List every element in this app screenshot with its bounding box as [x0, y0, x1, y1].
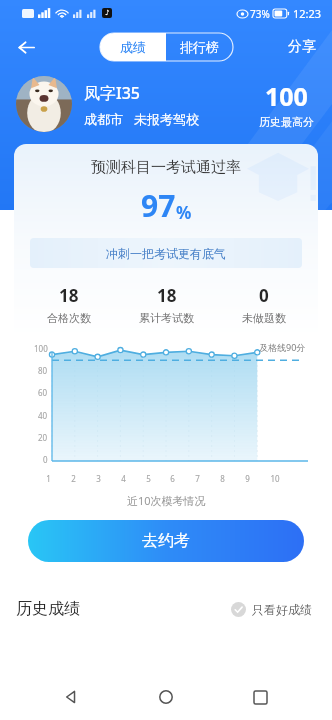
staticText: 3	[96, 473, 101, 484]
staticText: 成绩	[120, 39, 146, 55]
staticText: 历史最高分	[259, 115, 314, 129]
staticText: 分享	[288, 38, 316, 56]
button[interactable]: 排行榜	[166, 33, 233, 61]
staticText: 0	[259, 284, 269, 307]
button[interactable]: 18	[20, 284, 118, 325]
staticText: 凤字I35	[84, 82, 140, 104]
button[interactable]: 成绩	[100, 33, 166, 61]
staticText: 80	[38, 365, 48, 376]
button[interactable]: 冲刺一把考试更有底气	[30, 238, 302, 268]
button[interactable]: Back	[50, 675, 94, 719]
staticText: 18	[59, 284, 79, 307]
staticText: 0	[43, 454, 48, 465]
button[interactable]: Back	[8, 29, 44, 65]
staticText: 预测科目一考试通过率	[91, 158, 241, 177]
button[interactable]: 0	[215, 284, 312, 325]
staticText: 2	[71, 473, 76, 484]
staticText: 6	[170, 473, 175, 484]
staticText: 近10次模考情况	[127, 493, 206, 508]
staticText: 累计考试数	[139, 311, 194, 325]
staticText: %	[176, 201, 192, 224]
staticText: 100	[265, 79, 308, 113]
staticText: ♪	[105, 9, 110, 17]
staticText: 历史成绩	[16, 599, 80, 619]
staticText: 及格线90分	[259, 341, 306, 353]
staticText: 7	[195, 473, 200, 484]
staticText: 只看好成绩	[252, 602, 312, 617]
staticText: 5	[146, 473, 151, 484]
staticText: 100	[34, 343, 48, 354]
staticText: 12:23	[293, 6, 322, 21]
staticText: 成都市	[84, 111, 123, 127]
staticText: 18	[157, 284, 177, 307]
button[interactable]: 分享	[284, 34, 320, 60]
button[interactable]: 去约考	[28, 520, 304, 562]
staticText: 冲刺一把考试更有底气	[106, 246, 226, 261]
staticText: 8	[220, 473, 225, 484]
staticText: 9	[245, 473, 250, 484]
staticText: 97	[141, 185, 176, 226]
button[interactable]: 只看好成绩	[227, 598, 316, 621]
staticText: 排行榜	[180, 39, 219, 55]
staticText: 73%	[250, 7, 270, 21]
staticText: 未做题数	[242, 311, 286, 325]
staticText: 10	[270, 473, 280, 484]
staticText: 4	[121, 473, 126, 484]
button[interactable]	[16, 76, 72, 132]
staticText: 40	[38, 410, 48, 421]
button[interactable]: Recents	[238, 675, 282, 719]
staticText: 60	[38, 387, 48, 398]
staticText: 去约考	[142, 531, 190, 551]
staticText: 合格次数	[47, 311, 91, 325]
staticText: 未报考驾校	[134, 111, 199, 127]
staticText: 1	[46, 473, 51, 484]
button[interactable]: Home	[144, 675, 188, 719]
staticText: 20	[38, 432, 48, 443]
button[interactable]: 18	[118, 284, 215, 325]
